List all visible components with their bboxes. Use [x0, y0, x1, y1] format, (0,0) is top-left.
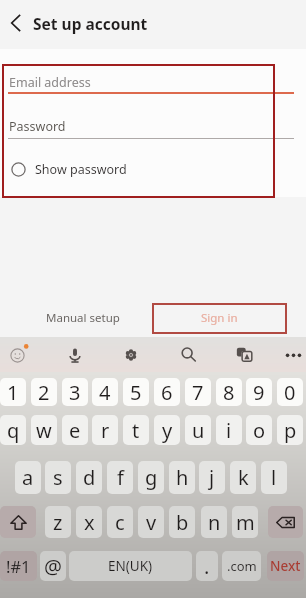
staticText: 0 [284, 379, 296, 406]
button[interactable]: 5 [123, 378, 149, 406]
button[interactable]: @ [40, 551, 66, 581]
staticText: d [83, 464, 96, 491]
staticText: Password [9, 118, 66, 135]
staticText: t [132, 417, 140, 444]
staticText: r [101, 417, 110, 444]
button[interactable]: Shift [0, 506, 36, 538]
button[interactable]: Emoji [1, 337, 35, 372]
staticText: j [209, 464, 215, 491]
button[interactable]: . [196, 551, 218, 581]
button[interactable]: n [201, 506, 227, 538]
button[interactable]: p [277, 415, 303, 445]
button[interactable]: Clipboard [227, 337, 261, 372]
staticText: 5 [130, 379, 142, 406]
button[interactable]: 3 [62, 378, 88, 406]
staticText: f [117, 464, 124, 491]
button[interactable]: 4 [92, 378, 118, 406]
staticText: y [162, 417, 173, 444]
staticText: Manual setup [46, 310, 120, 326]
button[interactable]: w [31, 415, 57, 445]
staticText: m [236, 509, 255, 536]
button[interactable]: k [230, 461, 256, 494]
button[interactable]: Show password [5, 157, 140, 181]
staticText: EN(UK) [108, 557, 153, 575]
staticText: c [115, 509, 125, 536]
staticText: Email address [9, 74, 91, 91]
button[interactable]: Backspace [268, 506, 303, 538]
staticText: q [7, 417, 20, 444]
staticText: x [84, 509, 95, 536]
button[interactable]: j [199, 461, 225, 494]
staticText: z [53, 509, 63, 536]
button[interactable]: s [45, 461, 71, 494]
staticText: b [176, 509, 189, 536]
staticText: 3 [69, 379, 81, 406]
staticText: e [69, 417, 81, 444]
button[interactable]: o [246, 415, 272, 445]
button[interactable]: c [107, 506, 133, 538]
button[interactable]: h [169, 461, 195, 494]
button[interactable]: r [92, 415, 118, 445]
button[interactable]: Next [267, 551, 304, 581]
button[interactable]: q [0, 415, 26, 445]
staticText: Next [270, 557, 301, 575]
button[interactable]: Manual setup [35, 306, 130, 330]
staticText: !#1 [6, 555, 31, 577]
staticText: 2 [38, 379, 50, 406]
button[interactable]: 0 [277, 378, 303, 406]
staticText: v [146, 509, 157, 536]
staticText: 7 [192, 379, 204, 406]
button[interactable]: z [45, 506, 71, 538]
button[interactable]: 6 [154, 378, 180, 406]
staticText: 1 [7, 379, 19, 406]
button[interactable]: b [169, 506, 195, 538]
staticText: Sign in [201, 310, 238, 326]
button[interactable]: 7 [185, 378, 211, 406]
button[interactable]: Sign in [156, 306, 283, 330]
button[interactable]: 2 [31, 378, 57, 406]
button[interactable]: d [76, 461, 102, 494]
button[interactable]: EN(UK) [69, 551, 192, 581]
staticText: 8 [223, 379, 235, 406]
button[interactable]: .com [222, 551, 261, 581]
staticText: n [208, 509, 221, 536]
staticText: .com [227, 557, 257, 575]
staticText: w [36, 417, 52, 444]
staticText: h [176, 464, 189, 491]
button[interactable]: Back [1, 9, 29, 37]
staticText: g [145, 464, 158, 491]
staticText: p [284, 417, 297, 444]
button[interactable]: y [154, 415, 180, 445]
staticText: Set up account [33, 13, 148, 34]
button[interactable]: Search [171, 337, 205, 372]
button[interactable]: x [76, 506, 102, 538]
staticText: s [53, 464, 63, 491]
button[interactable]: m [232, 506, 258, 538]
button[interactable]: a [15, 461, 41, 494]
button[interactable]: Keyboard settings [114, 337, 148, 372]
button[interactable]: l [261, 461, 287, 494]
button[interactable]: Voice input [58, 337, 92, 372]
staticText: . [204, 553, 210, 580]
staticText: @ [44, 553, 62, 580]
button[interactable]: More options [276, 337, 306, 372]
button[interactable]: v [138, 506, 164, 538]
staticText: 4 [99, 379, 111, 406]
button[interactable]: t [123, 415, 149, 445]
staticText: l [271, 464, 277, 491]
button[interactable]: 9 [246, 378, 272, 406]
staticText: k [238, 464, 249, 491]
button[interactable]: e [62, 415, 88, 445]
button[interactable]: 1 [0, 378, 26, 406]
staticText: Show password [35, 161, 127, 178]
button[interactable]: 8 [216, 378, 242, 406]
button[interactable]: i [216, 415, 242, 445]
staticText: u [192, 417, 205, 444]
staticText: a [22, 464, 34, 491]
staticText: 6 [161, 379, 173, 406]
button[interactable]: f [107, 461, 133, 494]
button[interactable]: g [138, 461, 164, 494]
button[interactable]: !#1 [0, 551, 37, 581]
staticText: 9 [253, 379, 265, 406]
button[interactable]: u [185, 415, 211, 445]
